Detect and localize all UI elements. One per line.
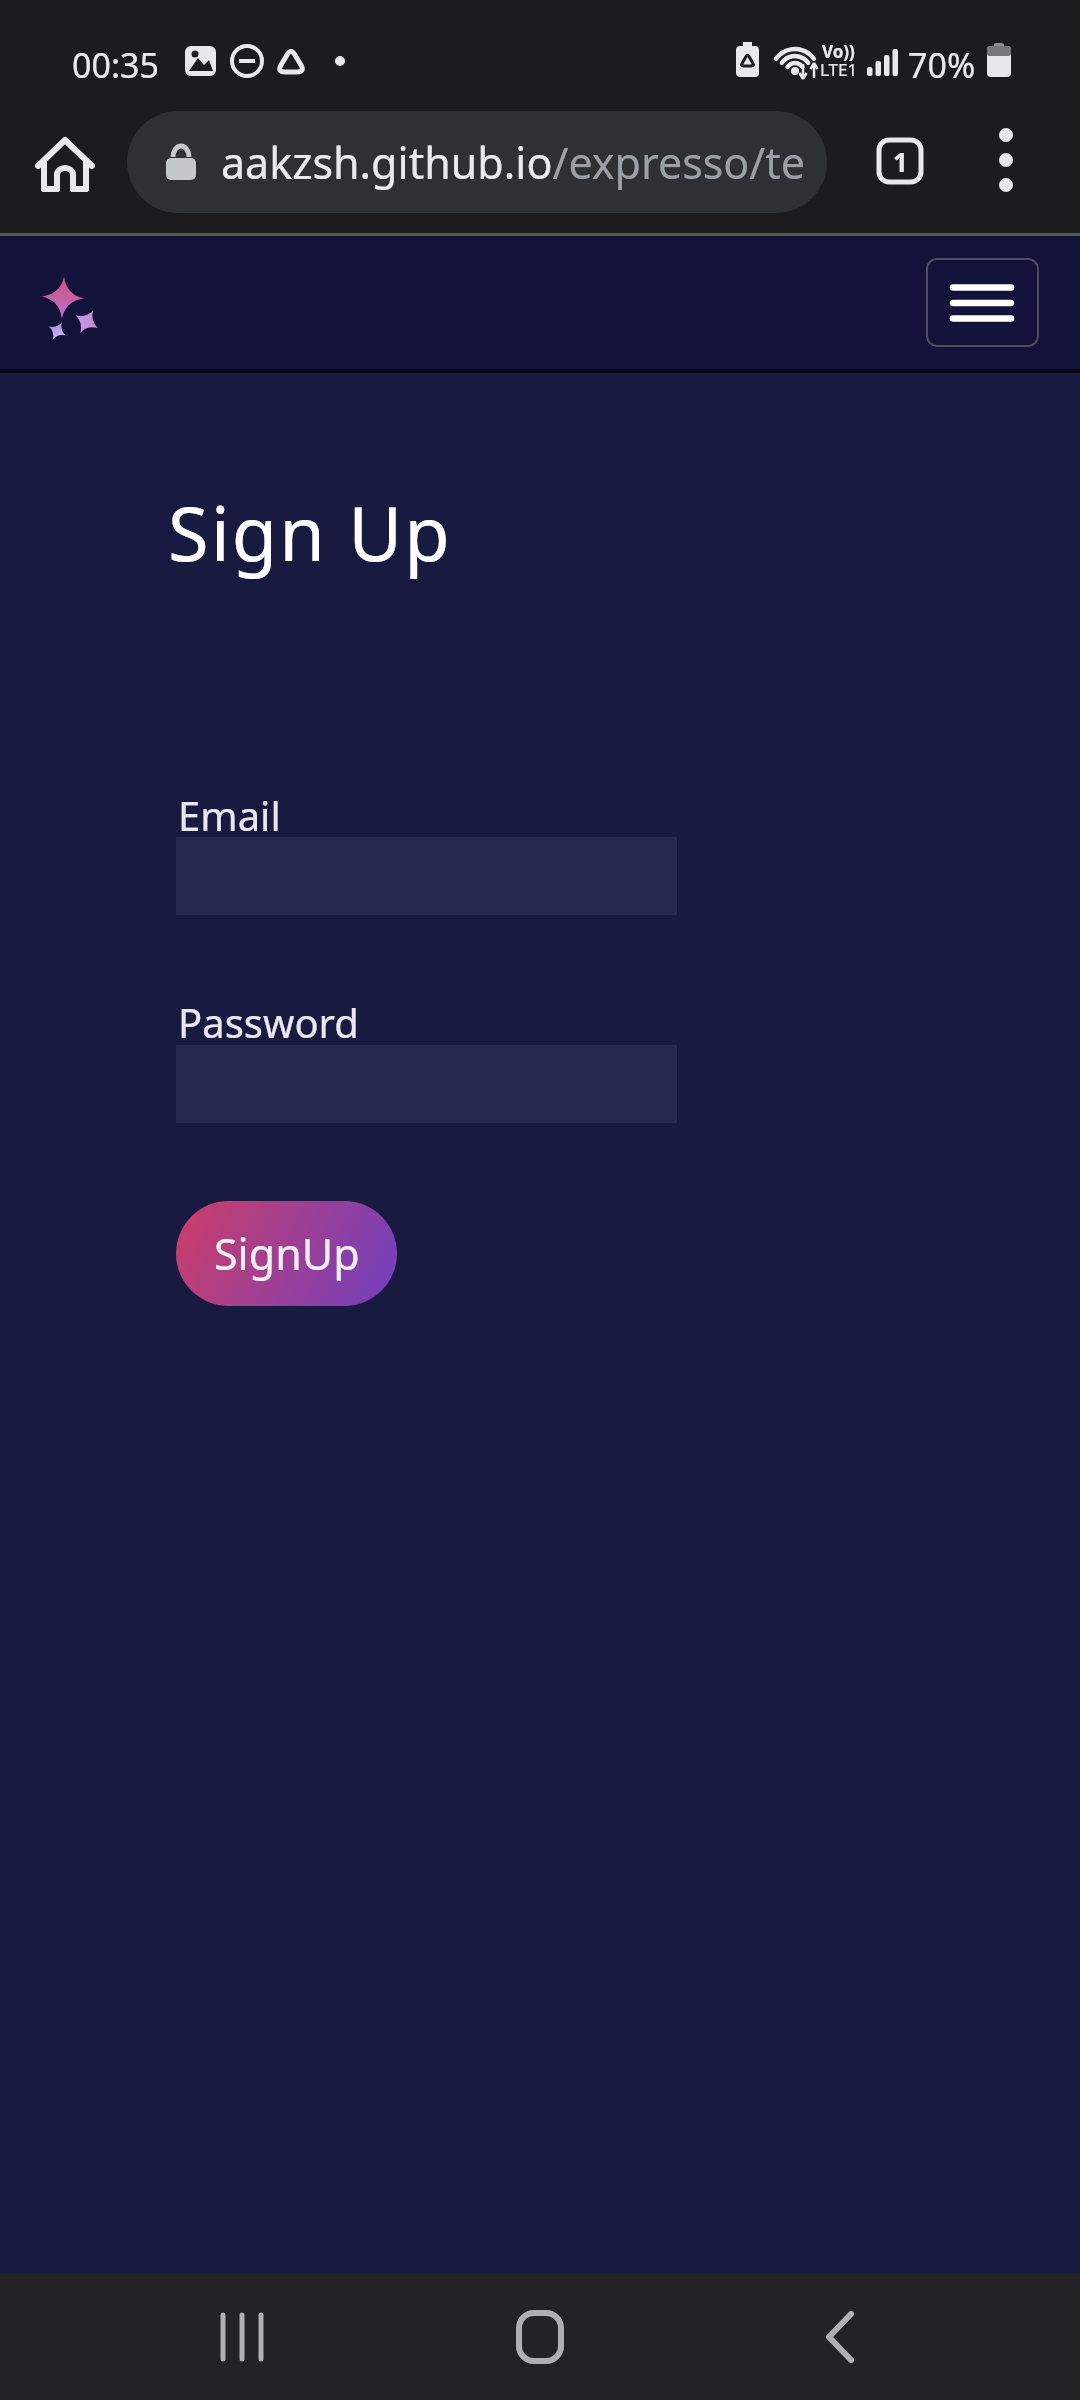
staticText: Email — [178, 788, 281, 842]
button[interactable] — [972, 125, 1042, 195]
staticText: 00:35 — [72, 42, 159, 88]
staticText: Password — [178, 995, 359, 1049]
button[interactable] — [470, 2273, 610, 2400]
staticText: 1 — [893, 144, 908, 179]
staticText: Sign Up — [168, 482, 452, 583]
staticText: LTE1 — [820, 58, 858, 81]
staticText: aakzsh.github.io/expresso/te — [221, 133, 806, 192]
staticText: Vo)) — [822, 40, 855, 63]
button[interactable] — [770, 2273, 910, 2400]
button[interactable] — [30, 126, 100, 196]
button[interactable]: 1 — [862, 123, 938, 199]
button[interactable]: aakzsh.github.io/expresso/te — [127, 111, 827, 213]
staticText: SignUp — [214, 1224, 360, 1283]
button[interactable] — [926, 258, 1039, 347]
staticText: 70% — [908, 42, 976, 88]
button[interactable] — [172, 2273, 312, 2400]
button[interactable]: SignUp — [176, 1201, 397, 1306]
